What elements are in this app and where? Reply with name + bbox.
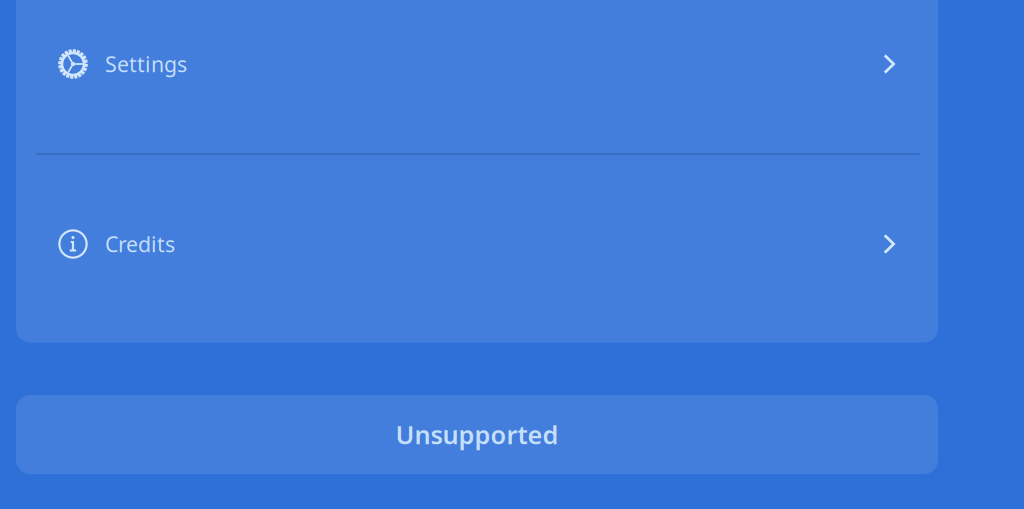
button[interactable]: Credits	[16, 154, 938, 333]
button[interactable]: Settings	[16, 0, 938, 153]
staticText: Unsupported	[395, 418, 558, 451]
button[interactable]: Unsupported	[16, 395, 938, 474]
staticText: Credits	[105, 230, 175, 258]
staticText: Settings	[105, 50, 187, 78]
